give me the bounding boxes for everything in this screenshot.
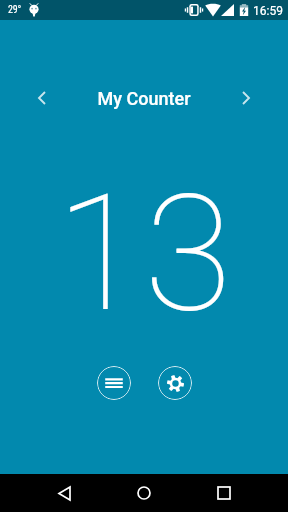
button[interactable]: Counter list (97, 366, 131, 400)
button[interactable]: Home (124, 474, 164, 512)
staticText: My Counter (0, 88, 288, 109)
button[interactable]: Next counter (230, 82, 262, 114)
button[interactable]: 13 (0, 160, 288, 349)
staticText: 29° (8, 4, 22, 16)
button[interactable]: Recent apps (204, 474, 244, 512)
button[interactable]: Back (44, 474, 84, 512)
button[interactable]: Previous counter (26, 82, 58, 114)
button[interactable]: Settings (158, 366, 192, 400)
staticText: 16:59 (253, 4, 283, 18)
